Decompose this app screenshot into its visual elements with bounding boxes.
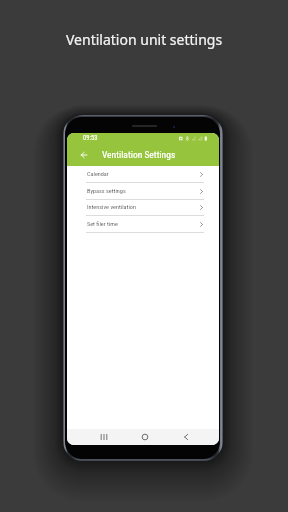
staticText: Set filer time (87, 220, 118, 227)
staticText: Bypass settings (87, 187, 126, 194)
button[interactable]: Back (78, 149, 90, 161)
button[interactable]: Calendar (67, 166, 219, 183)
button[interactable]: Recent apps (98, 431, 110, 443)
staticText: Intensive ventilation (87, 203, 136, 210)
button[interactable]: Set filer time (67, 216, 219, 233)
staticText: 09:53 (83, 134, 98, 142)
button[interactable]: Bypass settings (67, 183, 219, 200)
button[interactable]: Back (180, 431, 192, 443)
staticText: Ventilation Settings (102, 149, 176, 160)
button[interactable]: Intensive ventilation (67, 199, 219, 216)
staticText: Ventilation unit settings (66, 30, 223, 49)
staticText: Calendar (87, 170, 109, 177)
button[interactable]: Home (139, 431, 151, 443)
